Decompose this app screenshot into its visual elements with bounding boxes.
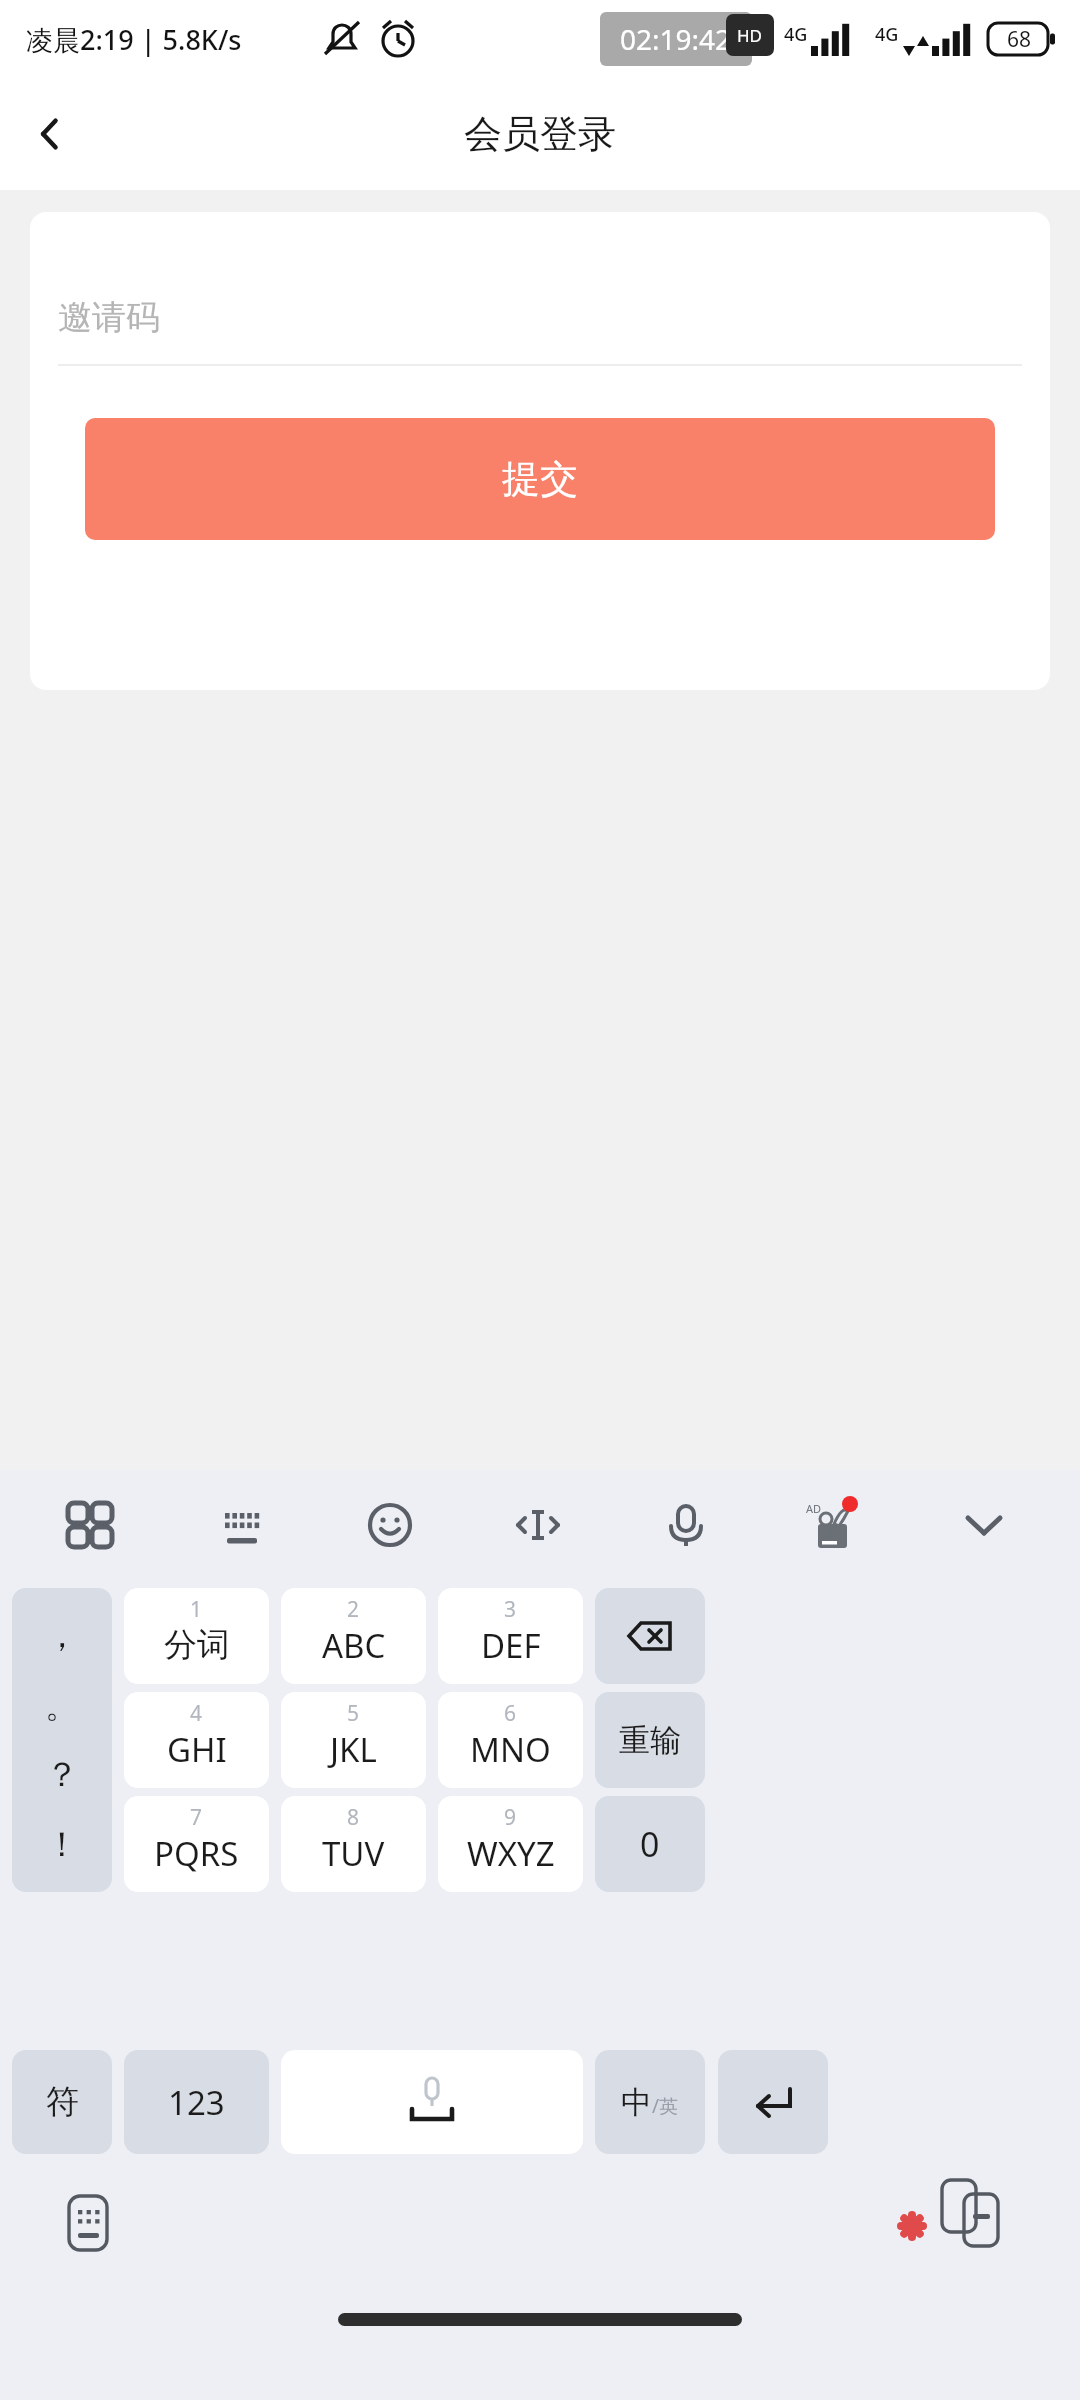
staticText: 1	[190, 1595, 203, 1624]
staticText: ？	[45, 1753, 79, 1796]
staticText: DEF	[481, 1623, 541, 1668]
button[interactable]: 符	[12, 2050, 112, 2154]
button[interactable]: 空格	[281, 2050, 583, 2154]
button[interactable]: 表情	[335, 1470, 445, 1580]
staticText: 8	[347, 1803, 360, 1832]
button[interactable]: ，	[12, 1588, 112, 1892]
staticText: 符	[46, 2081, 79, 2123]
button[interactable]: 回车	[718, 2050, 828, 2154]
button[interactable]: 收起	[929, 1470, 1039, 1580]
button[interactable]: 键盘	[187, 1470, 297, 1580]
staticText: WXYZ	[467, 1831, 555, 1876]
button[interactable]: 1	[124, 1588, 269, 1684]
staticText: 3	[504, 1595, 517, 1624]
button[interactable]: 2	[281, 1588, 426, 1684]
staticText: 4G	[784, 22, 808, 47]
staticText: 02:19:42	[620, 20, 732, 58]
button[interactable]: 广告	[779, 1470, 889, 1580]
button[interactable]: 9	[438, 1796, 583, 1892]
staticText: 中	[621, 2083, 652, 2122]
staticText: PQRS	[154, 1831, 239, 1876]
button[interactable]: 8	[281, 1796, 426, 1892]
button[interactable]: 语音	[631, 1470, 741, 1580]
staticText: /英	[652, 2093, 679, 2119]
staticText: 分词	[164, 1624, 230, 1666]
button[interactable]: 7	[124, 1796, 269, 1892]
staticText: AD	[806, 1501, 822, 1516]
staticText: 重输	[619, 1721, 681, 1760]
staticText: HD	[737, 24, 763, 47]
button[interactable]: 重输	[595, 1692, 705, 1788]
staticText: ABC	[322, 1623, 386, 1668]
staticText: 2	[347, 1595, 360, 1624]
staticText: 7	[190, 1803, 203, 1832]
button[interactable]: 返回	[0, 84, 100, 184]
staticText: 邀请码	[58, 296, 160, 339]
staticText: JKL	[330, 1727, 377, 1772]
staticText: 凌晨2:19 | 5.8K/s	[26, 21, 242, 58]
staticText: 9	[504, 1803, 517, 1832]
button[interactable]: 提交	[85, 418, 995, 540]
button[interactable]: 4	[124, 1692, 269, 1788]
staticText: 6	[504, 1699, 517, 1728]
button[interactable]: 123	[124, 2050, 269, 2154]
staticText: 。	[45, 1684, 79, 1727]
staticText: GHI	[167, 1727, 227, 1772]
staticText: 68	[1007, 25, 1032, 54]
staticText: 会员登录	[464, 110, 616, 158]
staticText: TUV	[322, 1831, 385, 1876]
button[interactable]: 删除	[595, 1588, 705, 1684]
staticText: MNO	[470, 1727, 551, 1772]
button[interactable]: 0	[595, 1796, 705, 1892]
staticText: 0	[640, 1821, 660, 1867]
button[interactable]: 光标	[483, 1470, 593, 1580]
staticText: 5	[347, 1699, 360, 1728]
button[interactable]: 面板	[35, 1470, 145, 1580]
button[interactable]: 3	[438, 1588, 583, 1684]
button[interactable]: 邀请码	[58, 270, 1022, 364]
staticText: 123	[168, 2080, 225, 2125]
button[interactable]: 中	[595, 2050, 705, 2154]
button[interactable]: 6	[438, 1692, 583, 1788]
button[interactable]: 5	[281, 1692, 426, 1788]
staticText: ，	[45, 1614, 79, 1657]
staticText: 4G	[875, 22, 899, 47]
staticText: ！	[45, 1823, 79, 1866]
button[interactable]: 切换键盘	[46, 2184, 130, 2262]
staticText: 提交	[502, 455, 578, 503]
staticText: 4	[190, 1699, 203, 1728]
